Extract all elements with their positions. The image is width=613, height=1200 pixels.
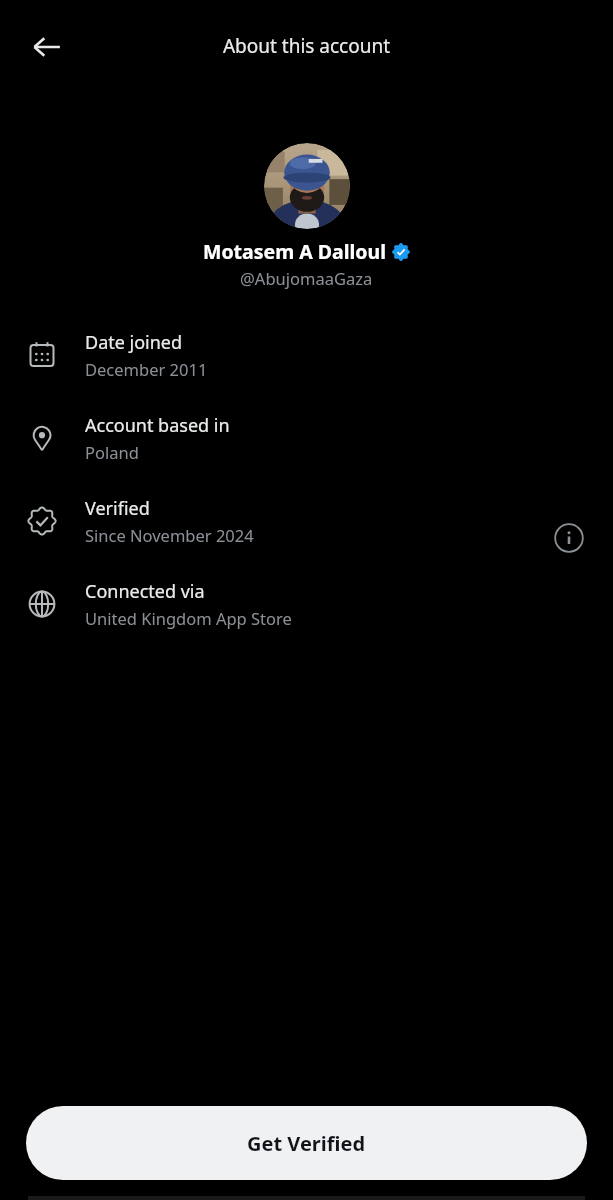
staticText: Date joined — [85, 330, 183, 355]
staticText: Account based in — [85, 413, 230, 438]
button[interactable]: Date joined — [0, 330, 613, 413]
staticText: December 2011 — [85, 358, 208, 380]
staticText: About this account — [0, 33, 613, 59]
button[interactable]: More info about verification — [549, 518, 589, 558]
button[interactable]: Get Verified — [26, 1106, 587, 1180]
button[interactable]: Profile photo — [264, 143, 350, 229]
staticText: Verified — [85, 496, 150, 521]
staticText: @AbujomaaGaza — [240, 267, 373, 289]
button[interactable]: Back — [22, 22, 72, 72]
staticText: Poland — [85, 441, 139, 463]
button[interactable]: Account based in — [0, 413, 613, 496]
staticText: Connected via — [85, 579, 205, 604]
staticText: Since November 2024 — [85, 524, 254, 546]
button[interactable]: Verified — [0, 496, 613, 579]
staticText: United Kingdom App Store — [85, 607, 292, 629]
staticText: Motasem A Dalloul — [203, 238, 387, 265]
staticText: Get Verified — [247, 1130, 366, 1157]
button[interactable]: Connected via — [0, 579, 613, 662]
